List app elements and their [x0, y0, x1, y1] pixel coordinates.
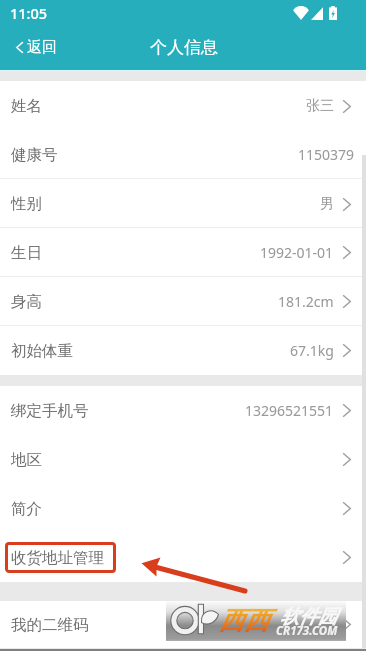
staticText: 地区	[11, 450, 42, 470]
staticText: 身高	[11, 292, 42, 312]
button[interactable]: 性别	[0, 179, 366, 228]
staticText: 收货地址管理	[11, 548, 104, 568]
button[interactable]: 我的二维码	[0, 601, 366, 648]
staticText: 健康号	[11, 145, 58, 165]
staticText: 西西	[219, 605, 269, 636]
button[interactable]: 地区	[0, 435, 366, 484]
staticText: 姓名	[11, 96, 42, 116]
staticText: 初始体重	[11, 341, 73, 361]
staticText: 181.2cm	[278, 292, 334, 311]
staticText: 软件园	[280, 605, 337, 629]
staticText: 绑定手机号	[11, 401, 89, 421]
staticText: 67.1kg	[290, 341, 334, 360]
button[interactable]: 绑定手机号	[0, 386, 366, 435]
button[interactable]: 身高	[0, 277, 366, 326]
staticText: 个人信息	[150, 37, 218, 58]
staticText: 我的二维码	[11, 615, 89, 635]
button[interactable]: 姓名	[0, 81, 366, 130]
staticText: 男	[320, 195, 334, 213]
staticText: 简介	[11, 499, 42, 519]
staticText: 张三	[306, 97, 334, 115]
staticText: 性别	[11, 194, 42, 214]
staticText: 1992-01-01	[260, 243, 334, 262]
staticText: 13296521551	[245, 401, 334, 420]
staticText: 返回	[27, 38, 57, 57]
button[interactable]: 健康号	[0, 130, 366, 179]
button[interactable]: 简介	[0, 484, 366, 533]
button[interactable]: 返回	[0, 30, 69, 65]
button[interactable]: 初始体重	[0, 326, 366, 375]
button[interactable]: 收货地址管理	[0, 533, 366, 582]
staticText: 生日	[11, 243, 42, 263]
button[interactable]: 生日	[0, 228, 366, 277]
staticText: CR173.COM	[276, 623, 338, 639]
staticText: 11:05	[10, 3, 48, 23]
staticText: 1150379	[298, 145, 355, 164]
